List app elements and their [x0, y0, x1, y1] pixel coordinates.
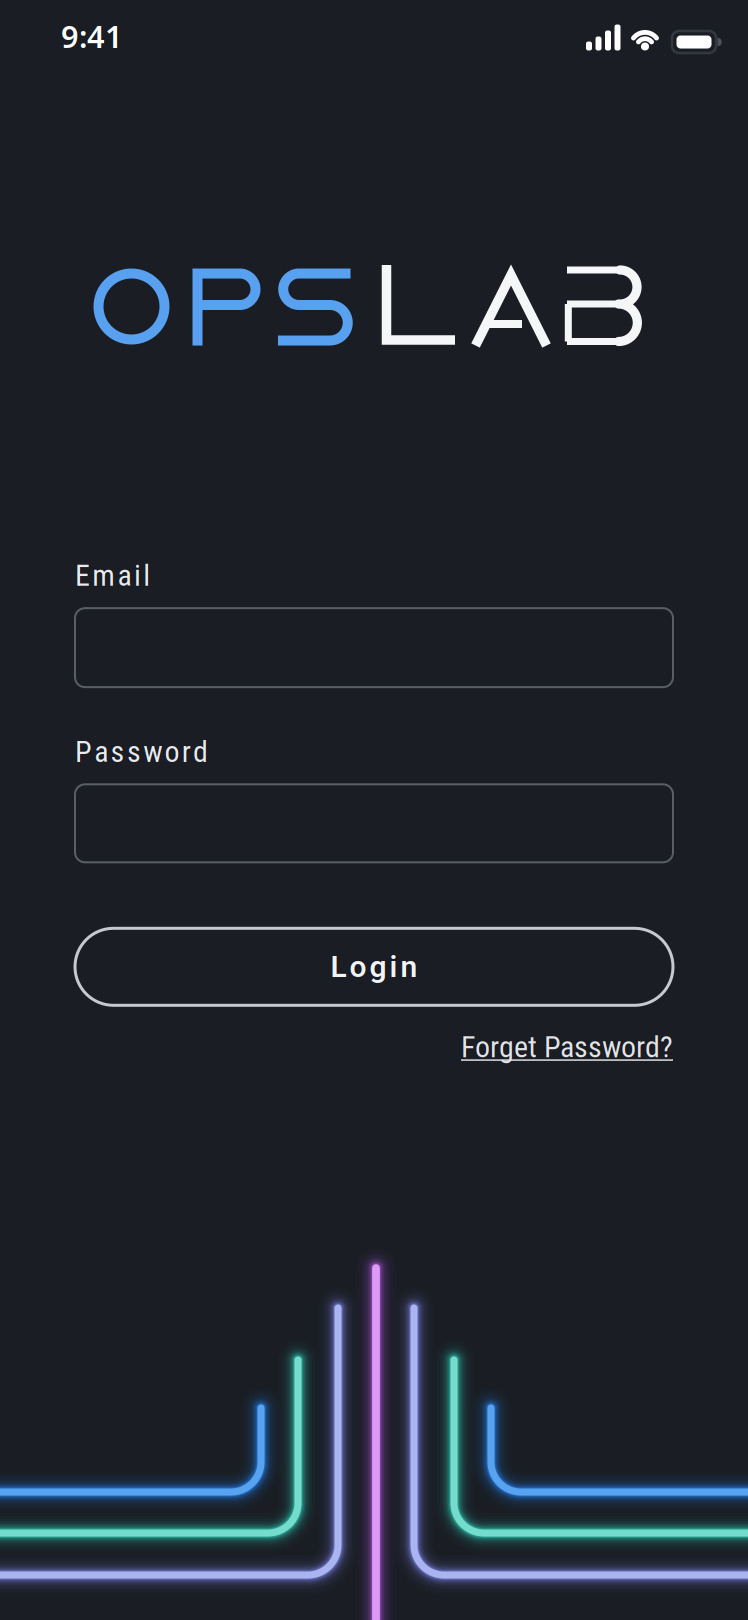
button[interactable]: Email — [75, 608, 673, 687]
button[interactable]: L — [75, 928, 673, 1005]
staticText: i — [134, 558, 141, 593]
staticText: a — [118, 558, 132, 593]
staticText: P — [75, 734, 92, 769]
staticText: d — [193, 734, 208, 769]
staticText: r — [182, 734, 191, 769]
staticText: s — [127, 734, 141, 769]
staticText: s — [111, 734, 125, 769]
staticText: a — [94, 734, 108, 769]
button[interactable]: Password — [75, 784, 673, 862]
staticText: g — [369, 949, 386, 984]
staticText: o — [164, 734, 179, 769]
staticText: n — [400, 949, 417, 984]
staticText: Forget Password? — [461, 1029, 673, 1064]
staticText: E — [75, 558, 90, 593]
staticText: L — [330, 949, 346, 984]
staticText: i — [389, 949, 397, 984]
staticText: w — [143, 734, 162, 769]
button[interactable]: Forget Password? — [461, 1029, 673, 1064]
staticText: 9:41 — [61, 16, 123, 56]
staticText: l — [143, 558, 150, 593]
staticText: o — [349, 949, 366, 984]
staticText: m — [92, 558, 115, 593]
